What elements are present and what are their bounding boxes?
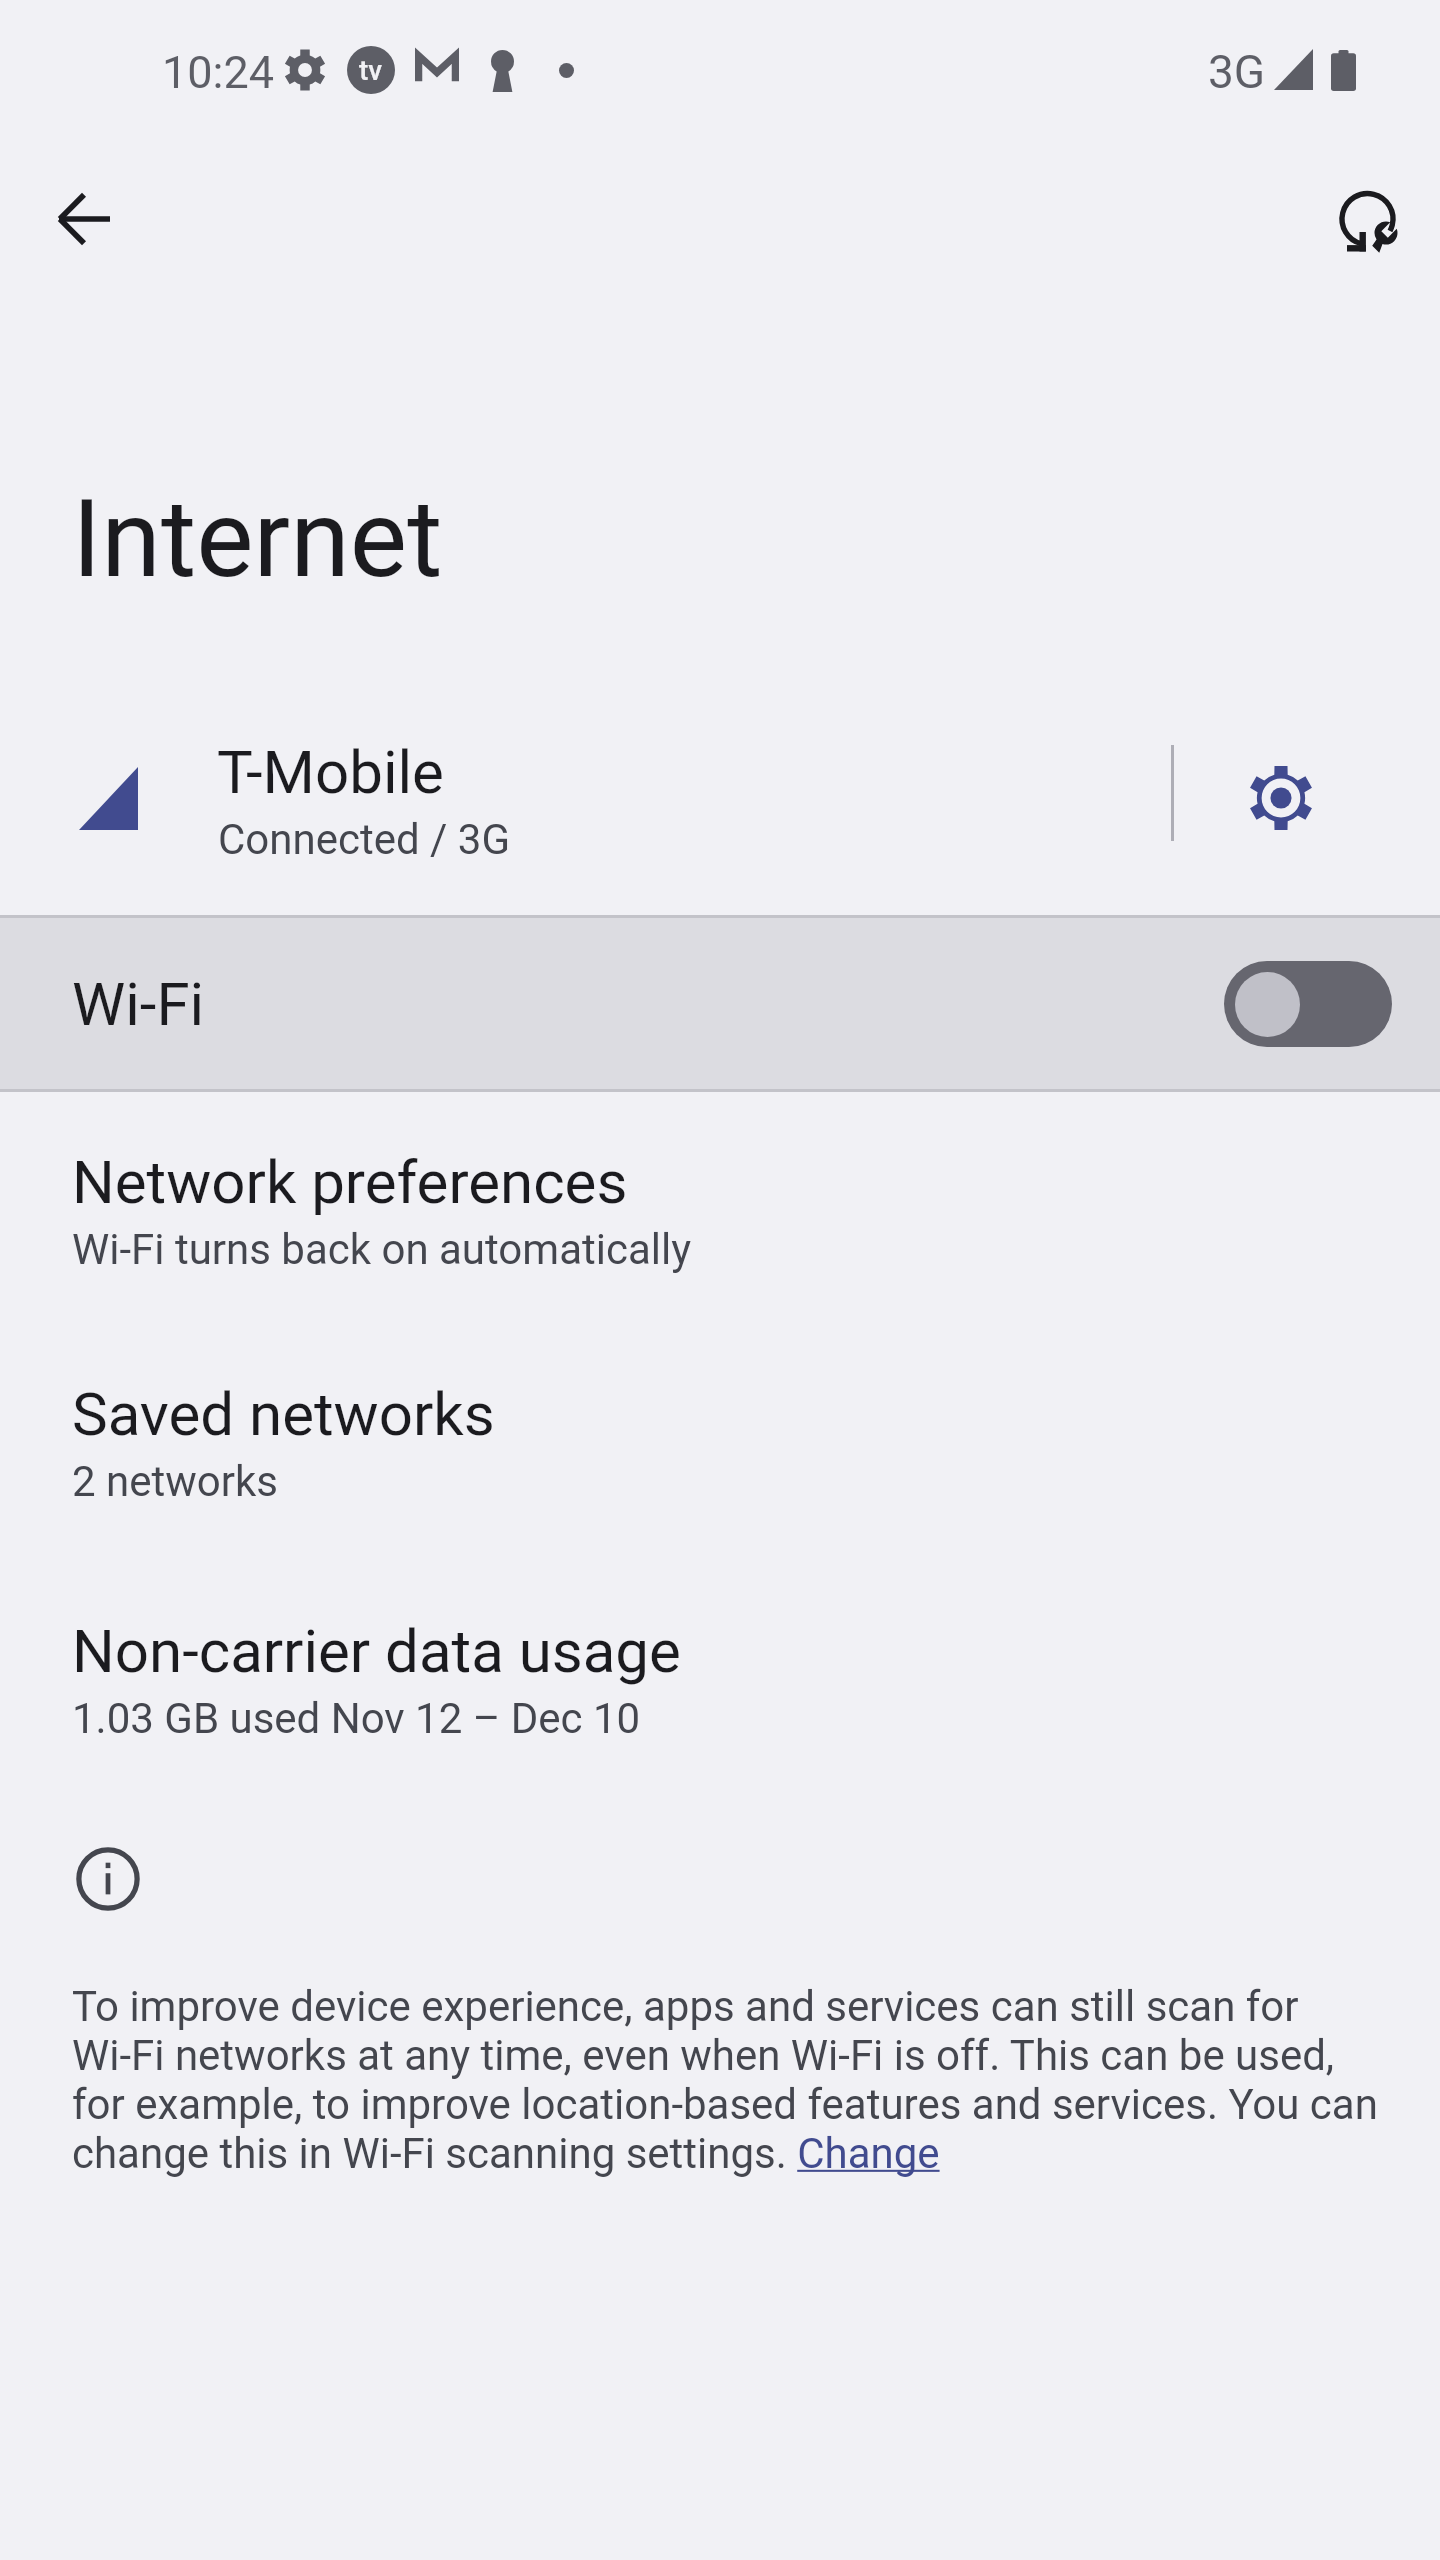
- button[interactable]: Wi-Fi off: [1224, 961, 1392, 1047]
- staticText: 10:24: [162, 46, 275, 99]
- button[interactable]: Fix connectivity: [1312, 164, 1430, 282]
- staticText: tv: [359, 54, 383, 87]
- staticText: Saved networks: [72, 1379, 495, 1449]
- button[interactable]: Saved networks: [0, 1371, 1440, 1608]
- staticText: Wi-Fi turns back on automatically: [72, 1225, 692, 1274]
- staticText: 2 networks: [72, 1457, 278, 1506]
- staticText: To improve device experience, apps and s…: [72, 1982, 1382, 2178]
- button[interactable]: Non-carrier data usage: [0, 1608, 1440, 1808]
- staticText: Connected / 3G: [218, 815, 511, 864]
- staticText: Wi-Fi: [72, 969, 205, 1039]
- staticText: Internet: [72, 476, 443, 603]
- staticText: Non-carrier data usage: [72, 1616, 681, 1686]
- staticText: 1.03 GB used Nov 12 – Dec 10: [72, 1694, 641, 1743]
- staticText: 3G: [1208, 45, 1266, 99]
- button[interactable]: Network preferences: [0, 1139, 1440, 1371]
- button[interactable]: Back: [25, 160, 143, 278]
- button[interactable]: T-Mobile: [0, 700, 1440, 915]
- staticText: T-Mobile: [217, 737, 444, 807]
- button[interactable]: Change Wi-Fi scanning settings: [795, 2126, 943, 2182]
- button[interactable]: Wi-Fi: [0, 915, 1440, 1092]
- staticText: Network preferences: [72, 1147, 628, 1217]
- button[interactable]: Carrier settings: [1222, 739, 1340, 857]
